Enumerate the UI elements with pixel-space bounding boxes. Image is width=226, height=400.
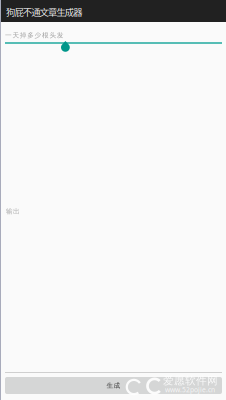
staticText: 生成 [106,381,120,390]
staticText: www.52pojie.cn [165,385,215,394]
button[interactable]: 生成 [5,377,222,394]
button[interactable]: 一天掉多少根头发 [5,26,222,44]
staticText: 一天掉多少根头发 [5,31,64,39]
staticText: 狗屁不通文章生成器 [6,5,82,18]
staticText: 爱愿软件网 [163,374,218,387]
staticText: 输出 [6,207,20,215]
